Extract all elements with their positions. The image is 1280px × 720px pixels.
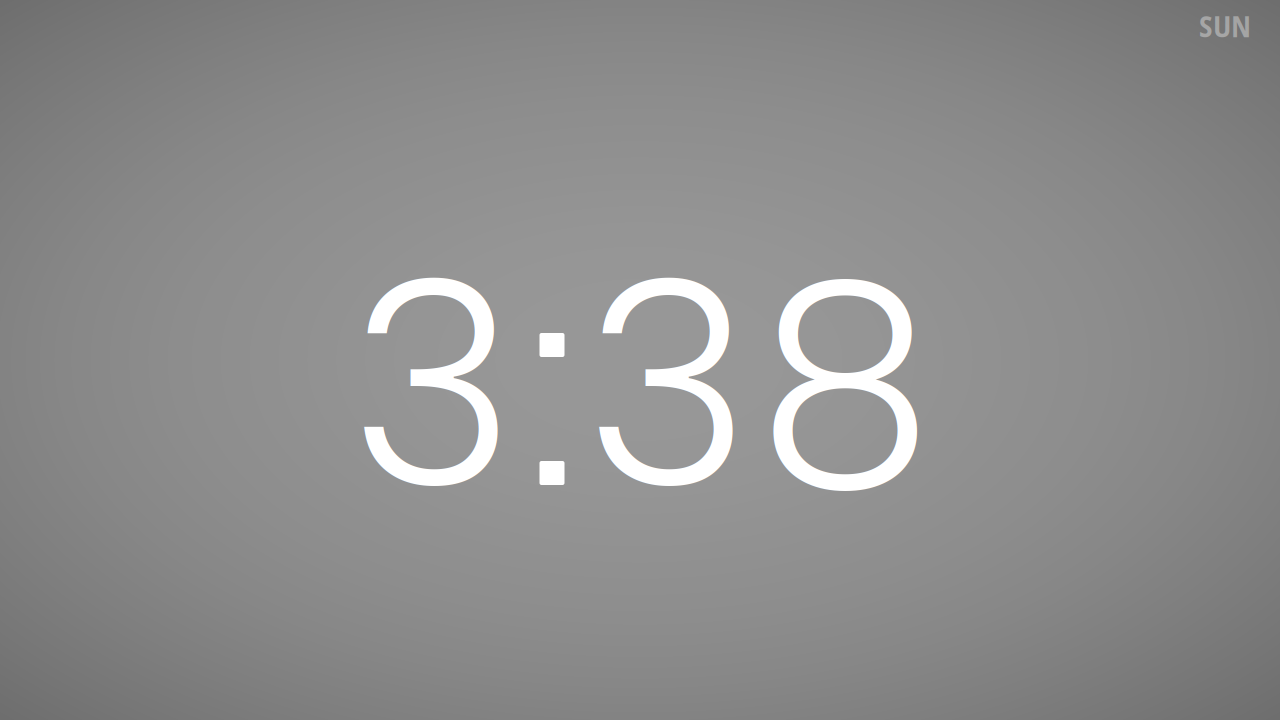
button[interactable]: SUN (1199, 6, 1251, 46)
staticText: 3 (350, 188, 515, 584)
staticText: 8 (757, 188, 933, 584)
staticText: 3 (585, 188, 750, 584)
staticText: SUN (1199, 6, 1251, 46)
button[interactable]: Wake display (0, 0, 1280, 720)
